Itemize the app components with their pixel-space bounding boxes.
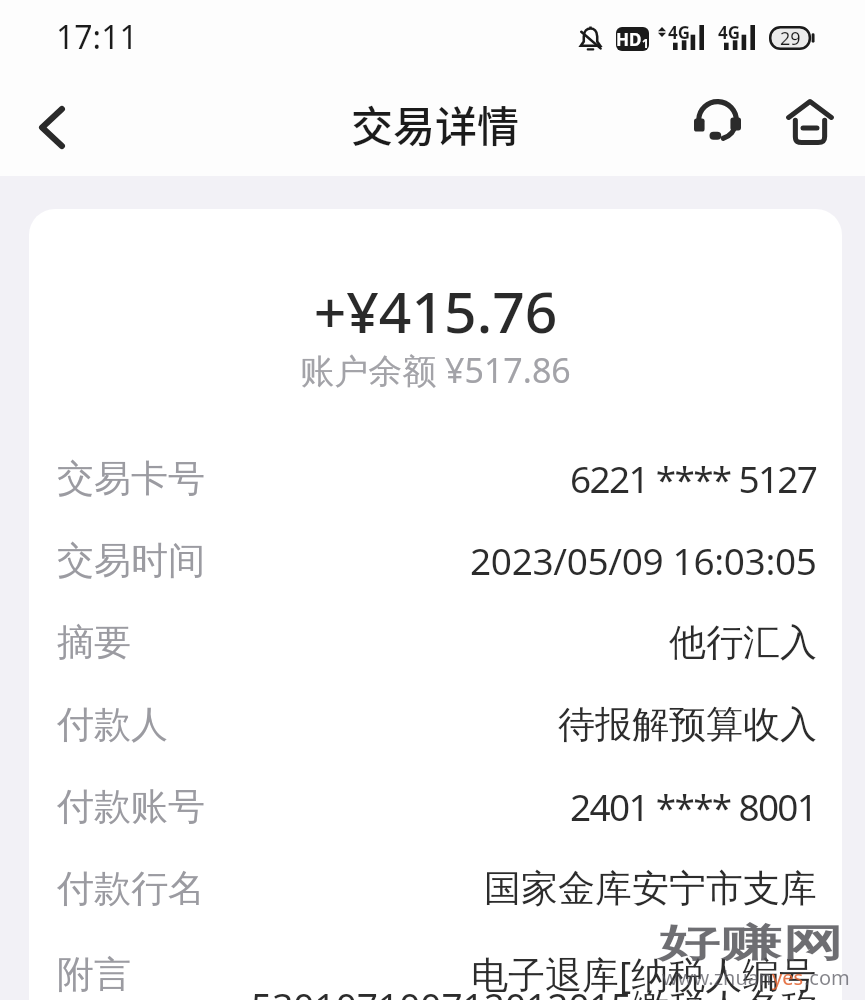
staticText: 1 (642, 35, 649, 51)
button[interactable]: 交易时间 (57, 519, 817, 601)
staticText: www.zhuan (662, 964, 772, 991)
staticText: 2401 **** 8001 (570, 781, 817, 831)
staticText: 29 (780, 26, 801, 50)
button[interactable]: Home (775, 87, 845, 157)
staticText: 摘要 (57, 619, 131, 666)
staticText: +¥415.76 (29, 272, 842, 350)
staticText: 4G (718, 21, 741, 44)
staticText: 4G (668, 21, 691, 44)
staticText: 交易时间 (57, 537, 205, 584)
button[interactable]: 摘要 (57, 601, 817, 683)
button[interactable]: Customer service (682, 85, 752, 155)
button[interactable]: 交易卡号 (57, 437, 817, 519)
staticText: 好赚网 (658, 919, 844, 967)
staticText: 国家金库安宁市支库 (484, 865, 817, 912)
button[interactable]: 付款行名 (57, 847, 817, 929)
staticText: 17:11 (56, 15, 138, 59)
staticText: 付款行名 (57, 865, 205, 912)
staticText: 付款账号 (57, 783, 205, 830)
button[interactable]: Back (14, 89, 90, 165)
staticText: 账户余额 ¥517.86 (29, 347, 842, 393)
staticText: HD (616, 28, 642, 51)
staticText: 待报解预算收入 (558, 701, 817, 748)
staticText: 付款人 (57, 701, 168, 748)
staticText: 他行汇入 (669, 619, 817, 666)
button[interactable]: 付款账号 (57, 765, 817, 847)
button[interactable]: 付款人 (57, 683, 817, 765)
staticText: 交易卡号 (57, 455, 205, 502)
staticText: 交易详情 (351, 93, 520, 154)
staticText: 附言 (57, 951, 131, 998)
staticText: 电子退库[纳税人编号 (471, 948, 817, 999)
staticText: 6221 **** 5127 (570, 453, 817, 503)
staticText: 530107100712012015缴税人名称 (251, 980, 817, 1000)
staticText: 2023/05/09 16:03:05 (470, 535, 817, 585)
staticText: .com (804, 964, 850, 991)
staticText: yes (772, 964, 804, 991)
